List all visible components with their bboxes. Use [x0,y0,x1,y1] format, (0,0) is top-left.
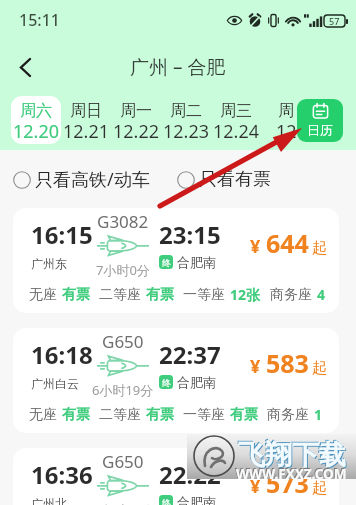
staticText: 有票 [62,406,90,424]
staticText: G3082 [97,210,149,233]
staticText: 7小时0分 [96,261,150,279]
staticText: 周三 [220,101,252,121]
staticText: WWW.FXXZ.COM [236,465,347,483]
staticText: 周日 [70,101,102,121]
button[interactable]: 周六 [11,96,61,144]
staticText: 16:36 [31,458,93,491]
staticText: 573 [266,466,309,500]
staticText: 广州东 [31,256,67,271]
staticText: 起 [312,359,327,378]
staticText: 15:11 [19,9,60,31]
staticText: 周六 [20,101,52,121]
staticText: ¥ [250,474,261,499]
staticText: 1 [314,405,323,424]
staticText: 周一 [120,101,152,121]
staticText: 二等座 [99,406,141,424]
staticText: 有票 [230,406,258,424]
staticText: 12 [276,119,297,144]
button[interactable]: 日历 [297,99,343,142]
staticText: 12.20 [13,119,60,144]
staticText: 起 [312,239,327,258]
staticText: 12.21 [63,119,110,144]
staticText: 二等座 [99,286,141,304]
button[interactable]: 周二 [161,96,211,144]
staticText: 12.23 [163,119,210,144]
staticText: 终 [162,257,171,268]
staticText: WWW.FXXZ.COM [235,464,346,482]
staticText: G650 [102,450,144,473]
staticText: 日历 [307,122,333,138]
staticText: 4 [317,285,326,304]
staticText: 583 [266,346,309,380]
button[interactable]: Back [7,49,43,85]
staticText: 终 [162,377,171,388]
staticText: 合肥南 [177,494,216,505]
staticText: 广州白云 [31,376,79,391]
staticText: 57 [329,15,340,27]
staticText: 合肥南 [177,374,216,390]
staticText: 有票 [146,406,174,424]
button[interactable]: 周 [261,96,311,144]
staticText: ¥ [250,354,261,379]
staticText: 只看有票 [199,168,271,191]
staticText: 飞翔下载 [238,438,346,472]
button[interactable]: 周一 [111,96,161,144]
staticText: 22:22 [159,458,221,491]
staticText: 有票 [62,286,90,304]
staticText: 12.22 [113,119,160,144]
staticText: 飞翔下载 [237,437,345,471]
staticText: 商务座 [270,286,312,304]
staticText: 无座 [29,286,57,304]
staticText: 合肥南 [177,254,216,270]
staticText: 起 [312,479,327,498]
staticText: 一等座 [183,286,225,304]
staticText: 只看高铁/动车 [35,167,150,192]
staticText: 6小时19分 [92,381,154,399]
button[interactable]: 只看有票 [177,164,271,195]
button[interactable]: 只看高铁/动车 [13,163,150,196]
staticText: 周 [278,101,294,121]
staticText: ¥ [250,234,261,259]
staticText: 16:18 [31,338,93,371]
button[interactable]: 周三 [211,96,261,144]
staticText: 飞翔下载 [239,439,347,473]
staticText: 5小时46分 [92,501,154,505]
button[interactable]: 16:18 [13,328,339,433]
staticText: 广州北 [31,496,67,505]
staticText: 终 [162,497,171,505]
button[interactable]: 16:36 [13,448,339,505]
staticText: 一等座 [183,406,225,424]
staticText: 12张 [230,285,261,304]
staticText: 有票 [146,286,174,304]
staticText: 12.24 [213,119,260,144]
staticText: G650 [102,330,144,353]
staticText: 周二 [170,101,202,121]
staticText: 商务座 [267,406,309,424]
staticText: 22:37 [159,338,221,371]
staticText: 广州 – 合肥 [130,54,226,80]
staticText: 644 [266,226,309,260]
staticText: 23:15 [159,218,221,251]
staticText: 16:15 [31,218,93,251]
button[interactable]: 16:15 [13,208,339,313]
button[interactable]: 周日 [61,96,111,144]
staticText: 无座 [29,406,57,424]
